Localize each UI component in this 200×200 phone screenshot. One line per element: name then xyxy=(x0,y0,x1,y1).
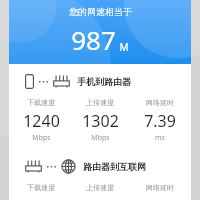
button[interactable]: 上传速度 xyxy=(72,183,128,200)
staticText: 您的网速相当于 xyxy=(69,6,132,17)
button[interactable]: 下载速度 xyxy=(13,183,69,200)
staticText: ms xyxy=(155,133,165,143)
staticText: Mbps xyxy=(32,133,51,143)
staticText: 下载速度 xyxy=(27,98,55,107)
other: Router xyxy=(25,159,42,174)
staticText: M xyxy=(119,40,129,54)
staticText: 1240 xyxy=(23,110,60,132)
staticText: 1302 xyxy=(82,110,119,132)
staticText: 987 xyxy=(71,22,116,57)
button[interactable]: 下载速度 xyxy=(13,98,69,143)
staticText: 手机到路由器 xyxy=(77,76,131,87)
staticText: 上传速度 xyxy=(86,98,114,107)
staticText: 7.39 xyxy=(144,110,176,132)
button[interactable]: 上传速度 xyxy=(72,98,128,143)
button[interactable]: Router xyxy=(9,159,191,174)
other: Router xyxy=(53,74,70,89)
button[interactable]: 网络延时 xyxy=(132,183,188,200)
staticText: 下载速度 xyxy=(27,183,55,192)
staticText: Mbps xyxy=(91,133,110,143)
staticText: 网络延时 xyxy=(146,183,174,192)
button[interactable]: Phone xyxy=(9,74,191,89)
staticText: 网络延时 xyxy=(146,98,174,107)
other: Phone xyxy=(25,74,34,89)
other: Internet xyxy=(61,159,76,174)
staticText: 路由器到互联网 xyxy=(83,161,146,172)
staticText: 上传速度 xyxy=(86,183,114,192)
button[interactable]: 网络延时 xyxy=(132,98,188,143)
